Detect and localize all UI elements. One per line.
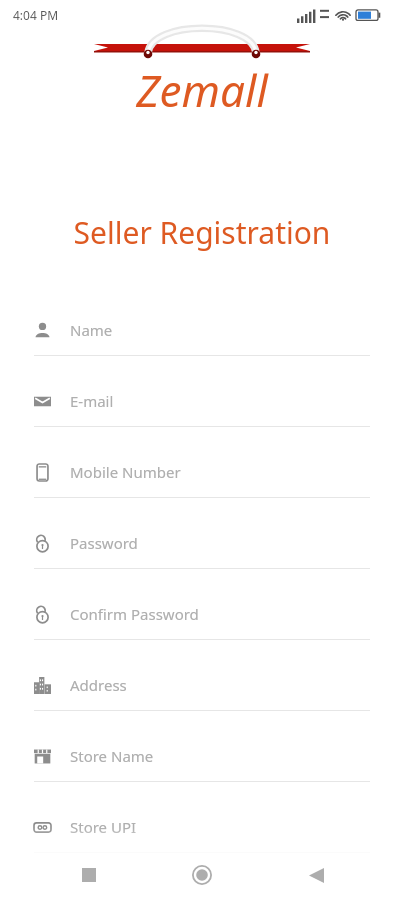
button[interactable]: Mobile Number [34, 447, 370, 518]
button[interactable]: Back [291, 850, 341, 900]
staticText: Confirm Password [70, 604, 199, 624]
staticText: Store Name [70, 746, 154, 766]
staticText: Zemall [136, 60, 268, 120]
staticText: Mobile Number [70, 462, 181, 482]
button[interactable]: Store UPI [34, 802, 370, 873]
button[interactable]: Confirm Password [34, 589, 370, 660]
staticText: Address [70, 675, 127, 695]
button[interactable]: E-mail [34, 376, 370, 447]
staticText: 4:04 PM [13, 7, 59, 23]
button[interactable]: Password [34, 518, 370, 589]
staticText: Seller Registration [0, 212, 404, 253]
button[interactable]: Store Name [34, 731, 370, 802]
staticText: Store UPI [70, 817, 137, 837]
button[interactable]: Address [34, 660, 370, 731]
button[interactable]: Home [177, 850, 227, 900]
button[interactable]: Recent apps [64, 850, 114, 900]
staticText: Password [70, 533, 138, 553]
button[interactable]: Name [34, 305, 370, 376]
staticText: E-mail [70, 391, 114, 411]
staticText: Name [70, 320, 113, 340]
